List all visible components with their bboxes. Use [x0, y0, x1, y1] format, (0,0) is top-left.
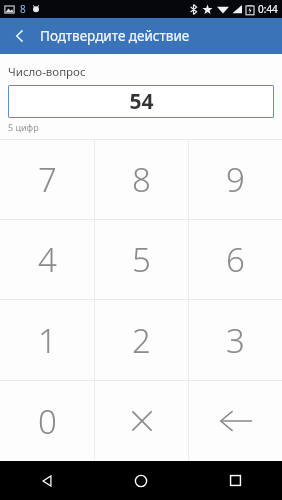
staticText: 5 цифр [8, 121, 39, 133]
staticText: 54 [129, 87, 154, 116]
staticText: 9 [226, 157, 245, 202]
staticText: 8 [20, 2, 26, 16]
button[interactable]: Recents [211, 461, 259, 500]
button[interactable]: 9 [189, 140, 282, 219]
staticText: 5 [132, 237, 151, 282]
button[interactable]: Back [23, 461, 71, 500]
button[interactable]: Backspace [189, 381, 282, 461]
button[interactable]: Clear [95, 381, 188, 461]
button[interactable]: 8 [95, 140, 188, 219]
button[interactable]: 54 [8, 85, 274, 118]
staticText: 2 [132, 318, 151, 363]
staticText: 0:44 [258, 2, 278, 16]
button[interactable]: 1 [0, 300, 94, 380]
button[interactable]: 3 [189, 300, 282, 380]
staticText: 6 [226, 237, 245, 282]
staticText: 7 [38, 157, 57, 202]
staticText: 4 [38, 237, 57, 282]
button[interactable]: 0 [0, 381, 94, 461]
staticText: 0 [38, 399, 57, 444]
button[interactable]: 4 [0, 220, 94, 299]
staticText: Число-вопрос [8, 64, 86, 80]
button[interactable]: Home [117, 461, 165, 500]
button[interactable]: 6 [189, 220, 282, 299]
staticText: 3 [226, 318, 245, 363]
staticText: Подтвердите действие [40, 27, 190, 45]
staticText: 1 [38, 318, 57, 363]
button[interactable]: 7 [0, 140, 94, 219]
button[interactable]: 5 [95, 220, 188, 299]
staticText: 8 [132, 157, 151, 202]
button[interactable]: Back [0, 18, 40, 54]
button[interactable]: 2 [95, 300, 188, 380]
